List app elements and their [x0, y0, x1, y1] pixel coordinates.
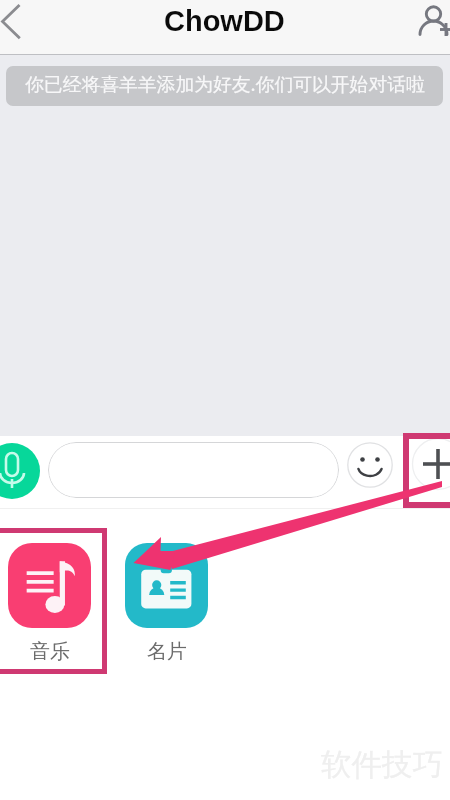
staticText: 音乐 — [30, 639, 70, 664]
button[interactable]: 名片 — [125, 543, 208, 664]
button[interactable] — [48, 442, 339, 498]
staticText: 你已经将喜羊羊添加为好友.你们可以开始对话啦 — [25, 71, 425, 97]
button[interactable]: Add contact — [412, 0, 450, 44]
staticText: 名片 — [147, 639, 187, 664]
button[interactable]: Emoji — [347, 442, 393, 488]
button[interactable]: More options — [412, 438, 450, 490]
staticText: ChowDD — [164, 5, 285, 37]
button[interactable]: Voice message — [0, 443, 40, 499]
button[interactable]: Back — [0, 0, 46, 46]
button[interactable]: 音乐 — [8, 543, 91, 664]
staticText: 软件技巧 — [321, 746, 443, 784]
